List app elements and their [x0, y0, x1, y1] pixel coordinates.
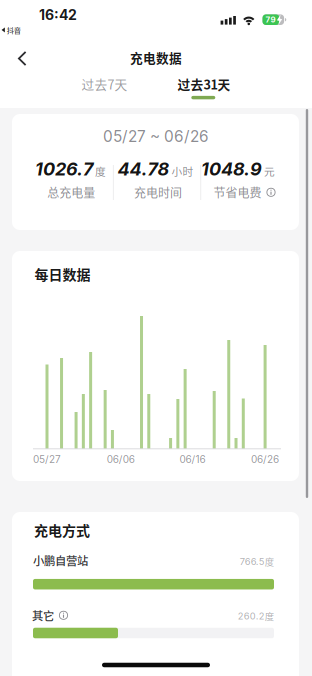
staticText: 抖音: [7, 25, 21, 35]
staticText: 79: [265, 15, 275, 25]
staticText: 充电数据: [130, 48, 182, 67]
staticText: 节省电费: [213, 184, 261, 201]
staticText: 元: [264, 163, 275, 179]
staticText: 充电时间: [134, 184, 182, 201]
button[interactable]: 其它说明: [59, 611, 68, 620]
button[interactable]: 返回抖音: [1, 25, 21, 35]
staticText: 过去7天: [82, 75, 128, 93]
staticText: 1026.7: [35, 158, 93, 180]
staticText: 06/06: [107, 453, 135, 465]
staticText: 260.2: [238, 610, 265, 622]
staticText: 度: [95, 163, 106, 179]
staticText: 充电方式: [34, 520, 90, 540]
staticText: 1048.9: [201, 158, 262, 180]
staticText: 05/27 ~ 06/26: [103, 127, 209, 146]
button[interactable]: 过去7天: [76, 71, 134, 97]
button[interactable]: 节省电费说明: [266, 188, 275, 197]
staticText: 过去31天: [177, 75, 230, 93]
staticText: 44.78: [117, 158, 169, 180]
button[interactable]: Back: [18, 51, 27, 66]
staticText: 05/27: [33, 453, 61, 465]
staticText: 小时: [171, 163, 193, 179]
staticText: 06/16: [179, 453, 205, 465]
staticText: 其它: [32, 607, 54, 623]
staticText: 每日数据: [34, 264, 90, 284]
staticText: 16:42: [39, 6, 77, 23]
staticText: 小鹏自营站: [33, 552, 88, 568]
staticText: 度: [265, 555, 274, 568]
staticText: 06/26: [251, 453, 279, 465]
staticText: 766.5: [240, 556, 265, 567]
staticText: 总充电量: [47, 184, 95, 201]
button[interactable]: 过去31天: [171, 71, 236, 97]
staticText: 度: [265, 609, 274, 623]
